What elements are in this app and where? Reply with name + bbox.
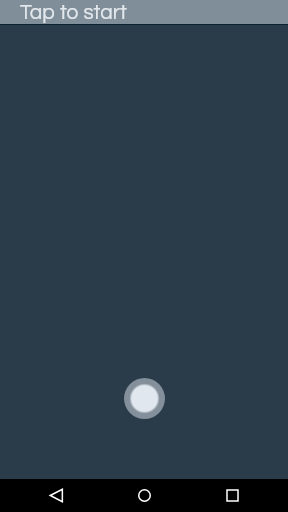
button[interactable]: Home: [120, 479, 168, 512]
button[interactable]: Game board, tap to start: [0, 0, 288, 512]
button[interactable]: Recent apps: [208, 479, 256, 512]
button[interactable]: Tap to start: [0, 0, 288, 24]
staticText: Tap to start: [20, 2, 127, 24]
button[interactable]: Back: [32, 479, 80, 512]
